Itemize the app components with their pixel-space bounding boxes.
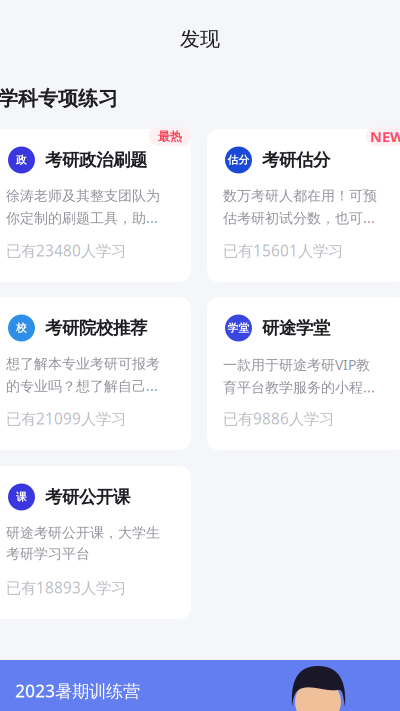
staticText: 徐涛老师及其整支团队为你定制的刷题工具，助... xyxy=(6,187,160,227)
staticText: 已有18893人学习 xyxy=(6,577,126,598)
button[interactable]: 学堂 xyxy=(207,297,400,450)
staticText: 学科专项练习 xyxy=(0,86,118,111)
button[interactable]: 政 xyxy=(0,129,191,282)
staticText: 已有23480人学习 xyxy=(6,240,126,261)
staticText: 考研估分 xyxy=(262,149,330,171)
staticText: 校 xyxy=(16,321,27,335)
staticText: 已有15601人学习 xyxy=(223,240,343,261)
staticText: 考研院校推荐 xyxy=(45,317,147,339)
button[interactable]: 2023暑期训练营 xyxy=(0,660,400,711)
staticText: NEW xyxy=(370,126,400,146)
staticText: 已有21099人学习 xyxy=(6,408,126,429)
staticText: 想了解本专业考研可报考的专业吗？想了解自己... xyxy=(6,355,160,395)
button[interactable]: 估分 xyxy=(207,129,400,282)
staticText: 政 xyxy=(16,153,27,167)
staticText: 研途学堂 xyxy=(262,317,330,339)
staticText: 考研公开课 xyxy=(45,486,130,508)
button[interactable]: 课 xyxy=(0,466,191,619)
staticText: 最热 xyxy=(158,129,182,144)
staticText: 一款用于研途考研VIP教育平台教学服务的小程... xyxy=(223,355,375,397)
staticText: 数万考研人都在用！可预估考研初试分数，也可... xyxy=(223,187,377,227)
staticText: 考研政治刷题 xyxy=(45,149,147,171)
staticText: 发现 xyxy=(180,26,220,52)
staticText: 研途考研公开课，大学生考研学习平台 xyxy=(6,524,160,563)
staticText: 已有9886人学习 xyxy=(223,408,334,429)
staticText: 课 xyxy=(16,490,27,504)
staticText: 2023暑期训练营 xyxy=(15,679,140,703)
staticText: 估分 xyxy=(227,153,249,167)
button[interactable]: 发现 xyxy=(0,24,400,54)
button[interactable]: 校 xyxy=(0,297,191,450)
staticText: 学堂 xyxy=(227,321,249,335)
